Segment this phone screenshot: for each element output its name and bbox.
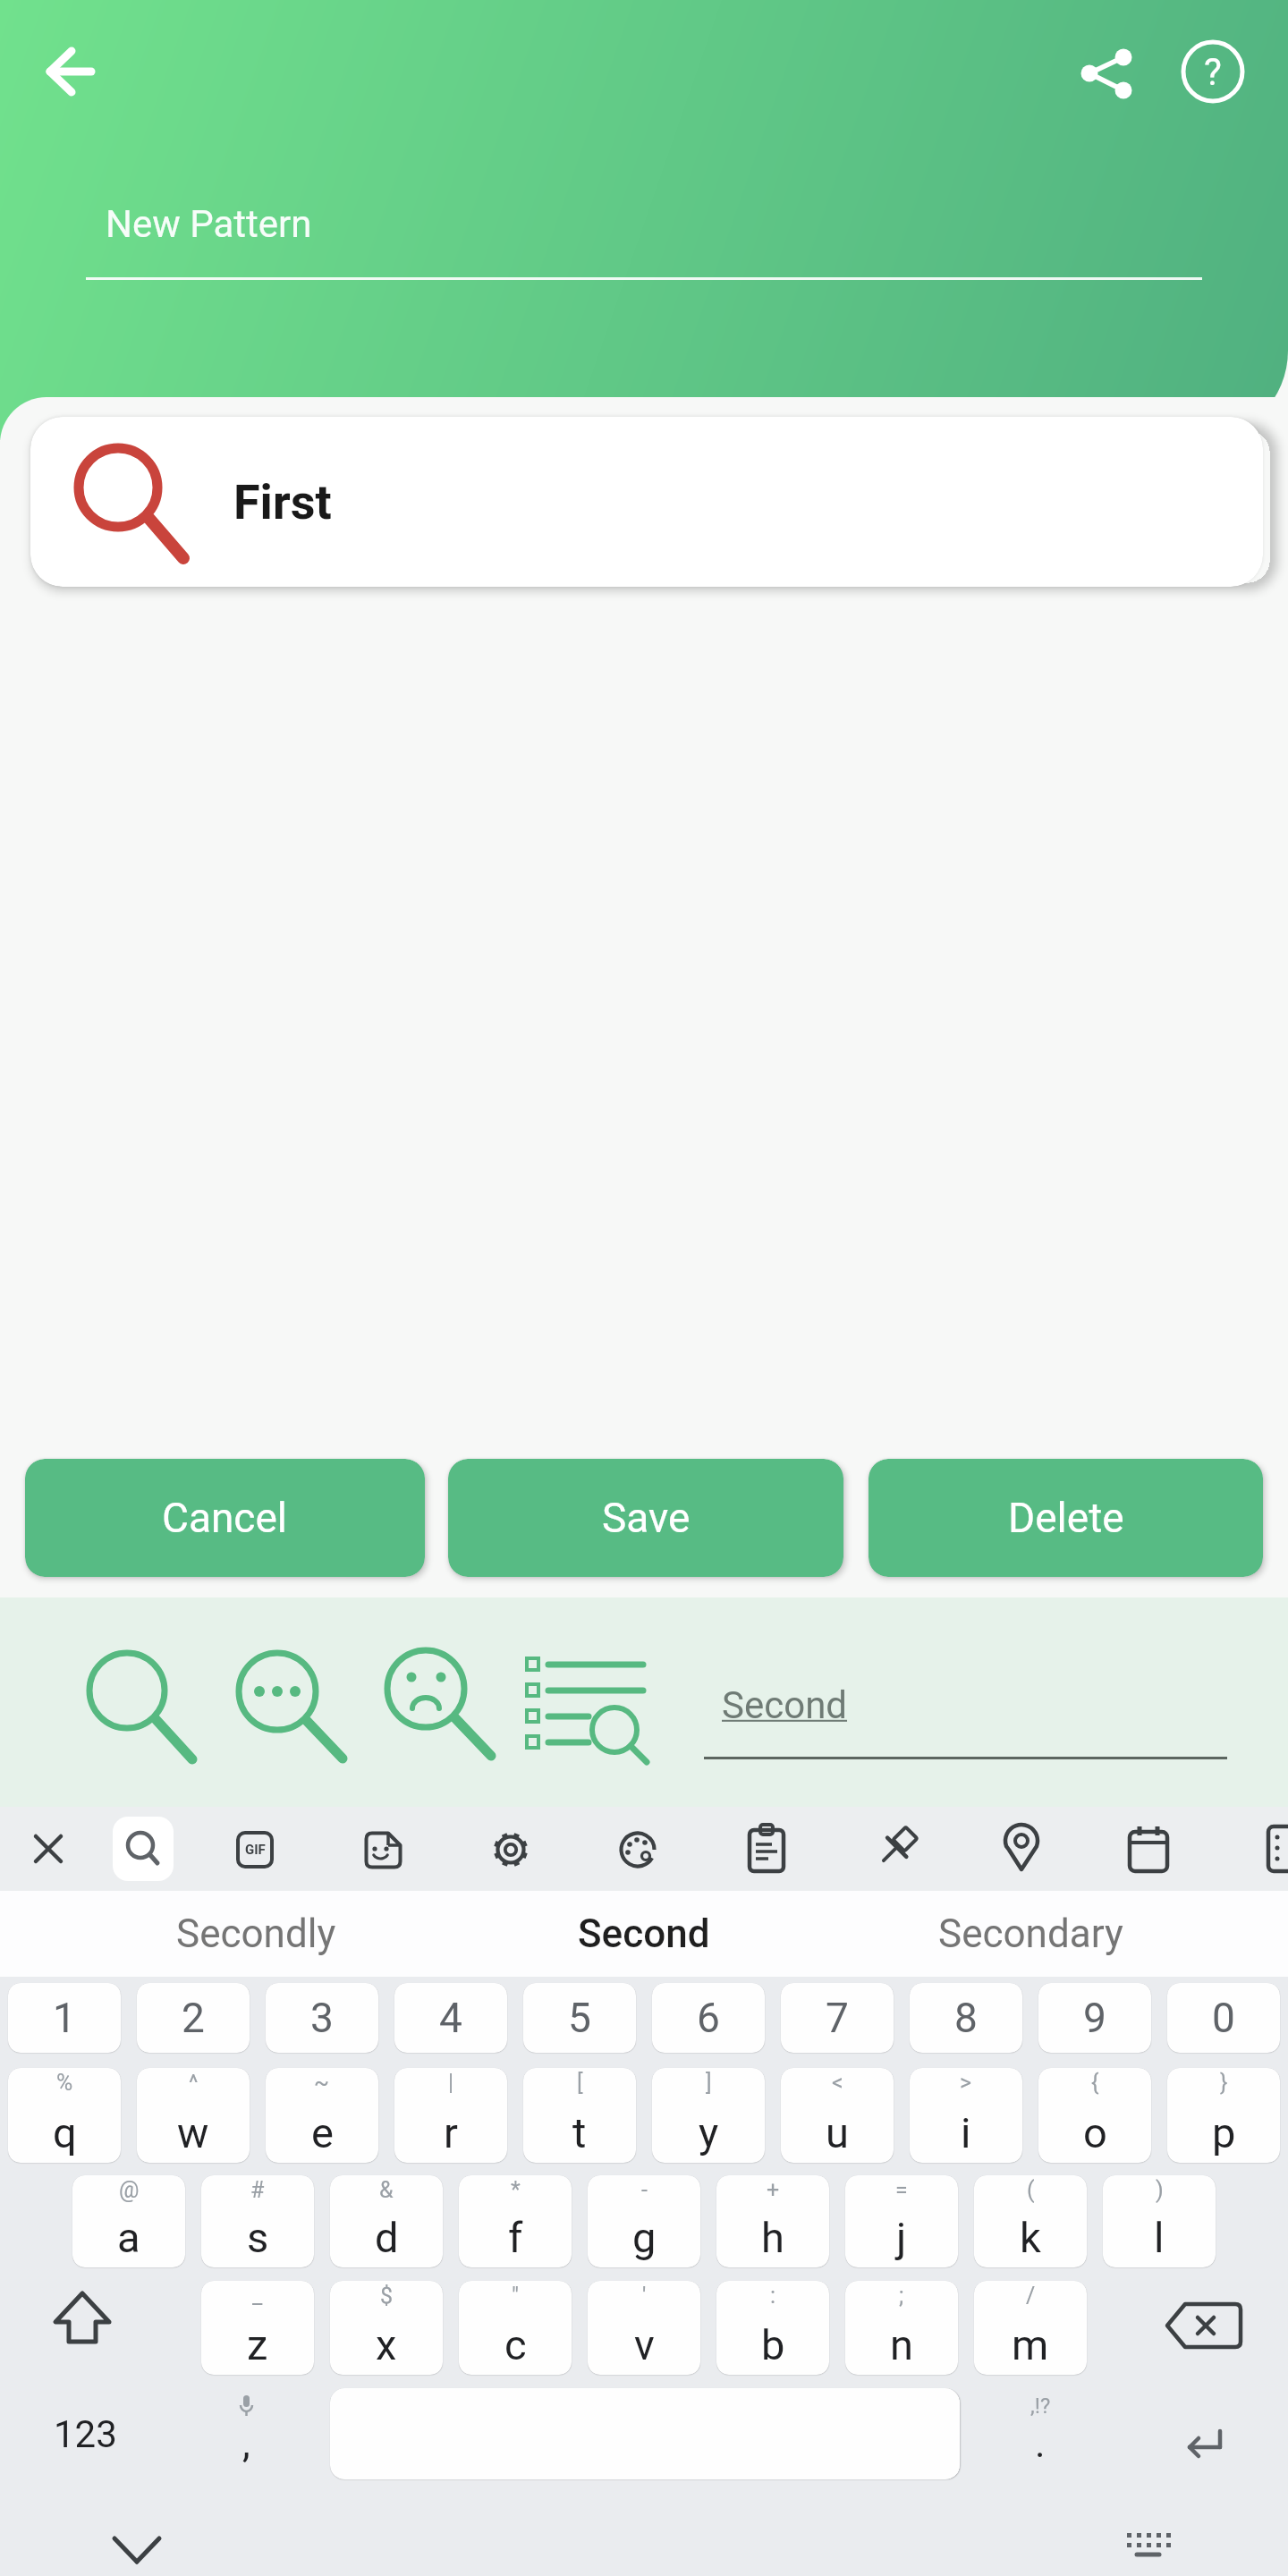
button[interactable]: 3 — [266, 1983, 378, 2053]
button[interactable]: / — [974, 2281, 1087, 2375]
button[interactable]: [ — [523, 2068, 636, 2163]
button[interactable]: Secondary — [869, 1891, 1191, 1977]
staticText: . — [1035, 2420, 1046, 2467]
button[interactable] — [1126, 1823, 1171, 1875]
button[interactable]: $ — [330, 2281, 443, 2375]
staticText: f — [508, 2213, 523, 2262]
button[interactable]: } — [1167, 2068, 1280, 2163]
button[interactable]: @ — [72, 2175, 185, 2267]
button[interactable]: * — [459, 2175, 572, 2267]
button[interactable]: 9 — [1038, 1983, 1151, 2053]
button[interactable]: ~ — [266, 2068, 378, 2163]
staticText: 2 — [182, 1994, 205, 2042]
button[interactable] — [79, 1642, 204, 1767]
button[interactable] — [27, 1827, 70, 1870]
button[interactable] — [98, 2522, 175, 2576]
button[interactable]: > — [910, 2068, 1022, 2163]
button[interactable]: 1 — [8, 1983, 121, 2053]
button[interactable]: 7 — [781, 1983, 894, 2053]
button[interactable] — [491, 1830, 530, 1869]
staticText: ~ — [314, 2070, 330, 2096]
staticText: 4 — [439, 1994, 462, 2042]
button[interactable]: # — [201, 2175, 314, 2267]
button[interactable]: 5 — [523, 1983, 636, 2053]
button[interactable]: , — [188, 2388, 304, 2479]
button[interactable] — [1263, 1823, 1288, 1875]
button[interactable] — [1120, 2524, 1182, 2571]
staticText: Second — [722, 1683, 848, 1727]
button[interactable]: " — [459, 2281, 572, 2375]
button[interactable]: { — [1038, 2068, 1151, 2163]
button[interactable]: 2 — [137, 1983, 250, 2053]
staticText: ,!? — [1030, 2394, 1051, 2419]
staticText: p — [1212, 2108, 1236, 2157]
staticText: " — [512, 2283, 520, 2309]
staticText: b — [761, 2320, 785, 2369]
button[interactable]: 0 — [1167, 1983, 1280, 2053]
staticText: New Pattern — [106, 202, 312, 246]
button[interactable]: Secondly — [95, 1891, 417, 1977]
button[interactable]: - — [588, 2175, 700, 2267]
button[interactable]: < — [781, 2068, 894, 2163]
staticText: 1 — [53, 1994, 76, 2042]
button[interactable]: Save — [448, 1459, 843, 1577]
button[interactable]: Delete — [869, 1459, 1263, 1577]
staticText: n — [890, 2320, 913, 2369]
button[interactable]: Second — [704, 1665, 1227, 1758]
button[interactable] — [1000, 1821, 1043, 1875]
button[interactable]: ; — [845, 2281, 958, 2375]
button[interactable] — [43, 2286, 123, 2368]
button[interactable] — [36, 39, 104, 107]
button[interactable]: = — [845, 2175, 958, 2267]
staticText: GIF — [245, 1842, 266, 1858]
staticText: < — [832, 2070, 843, 2096]
button[interactable]: 8 — [910, 1983, 1022, 2053]
button[interactable]: ) — [1103, 2175, 1216, 2267]
button[interactable]: Cancel — [25, 1459, 425, 1577]
button[interactable] — [618, 1830, 657, 1869]
button[interactable]: Second — [483, 1891, 805, 1977]
staticText: Second — [578, 1911, 710, 1957]
button[interactable] — [228, 1642, 353, 1767]
staticText: t — [572, 2108, 587, 2157]
button[interactable]: ^ — [137, 2068, 250, 2163]
staticText: ] — [706, 2070, 712, 2096]
button[interactable]: 4 — [394, 1983, 507, 2053]
staticText: ) — [1156, 2177, 1164, 2203]
button[interactable]: + — [716, 2175, 829, 2267]
staticText: 5 — [568, 1994, 591, 2042]
button[interactable]: ] — [652, 2068, 765, 2163]
staticText: 6 — [697, 1994, 720, 2042]
button[interactable]: ( — [974, 2175, 1087, 2267]
button[interactable] — [376, 1640, 501, 1765]
button[interactable]: 6 — [652, 1983, 765, 2053]
staticText: w — [177, 2108, 209, 2157]
button[interactable]: & — [330, 2175, 443, 2267]
staticText: / — [1026, 2283, 1036, 2309]
staticText: > — [960, 2070, 972, 2096]
button[interactable] — [745, 1823, 788, 1875]
staticText: _ — [252, 2283, 263, 2309]
staticText: y — [699, 2108, 719, 2157]
button[interactable] — [113, 1817, 174, 1881]
button[interactable]: First — [30, 417, 1263, 587]
button[interactable] — [1158, 2290, 1251, 2361]
button[interactable]: ' — [588, 2281, 700, 2375]
button[interactable] — [1070, 38, 1141, 109]
button[interactable] — [521, 1651, 656, 1769]
button[interactable]: ,!? — [982, 2388, 1098, 2479]
button[interactable] — [364, 1831, 403, 1870]
staticText: e — [311, 2108, 334, 2157]
button[interactable]: 123 — [27, 2388, 143, 2479]
staticText: = — [895, 2177, 908, 2203]
button[interactable]: ? — [1181, 39, 1245, 104]
button[interactable]: | — [394, 2068, 507, 2163]
button[interactable]: % — [8, 2068, 121, 2163]
button[interactable]: : — [716, 2281, 829, 2375]
button[interactable] — [869, 1823, 919, 1875]
button[interactable]: GIF — [236, 1831, 274, 1868]
button[interactable] — [1163, 2404, 1249, 2467]
button[interactable]: _ — [201, 2281, 314, 2375]
staticText: d — [375, 2213, 399, 2262]
